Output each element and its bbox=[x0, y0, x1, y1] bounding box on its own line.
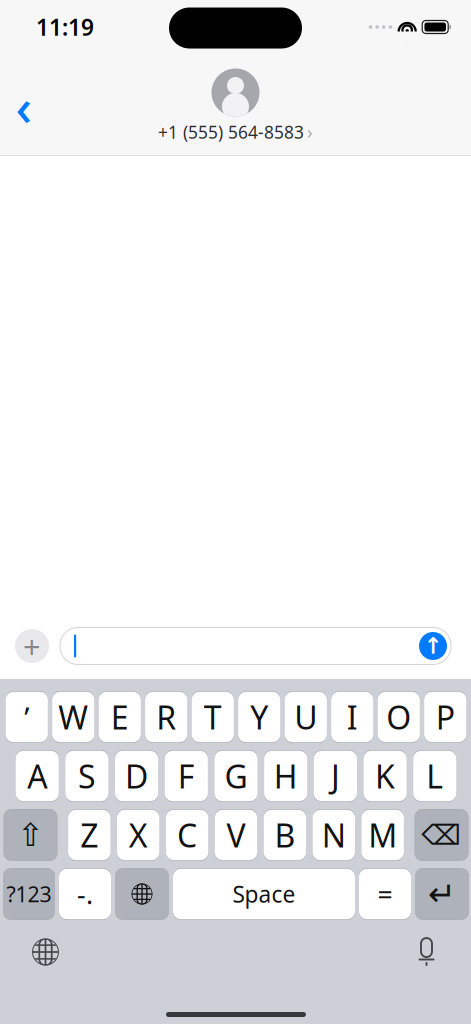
staticText: U bbox=[294, 696, 317, 738]
button[interactable]: H bbox=[264, 750, 307, 802]
staticText: 11:19 bbox=[36, 12, 94, 42]
button[interactable]: B bbox=[264, 809, 306, 861]
staticText: I bbox=[347, 696, 358, 738]
staticText: ‹ bbox=[15, 72, 32, 140]
staticText: ↵ bbox=[428, 875, 456, 913]
button[interactable]: Switch keyboard bbox=[22, 929, 68, 975]
staticText: J bbox=[331, 755, 340, 797]
button[interactable]: J bbox=[314, 750, 357, 802]
staticText: ’ bbox=[24, 697, 29, 736]
staticText: ⌫ bbox=[421, 819, 461, 851]
button[interactable]: Send bbox=[419, 632, 447, 660]
button[interactable]: Z bbox=[68, 809, 110, 861]
button[interactable]: G bbox=[214, 750, 258, 802]
staticText: N bbox=[322, 814, 346, 856]
staticText: C bbox=[177, 814, 197, 856]
staticText: D bbox=[125, 755, 148, 797]
button[interactable]: M bbox=[361, 809, 404, 861]
staticText: Z bbox=[80, 814, 98, 856]
button[interactable]: Shift bbox=[3, 809, 57, 861]
button[interactable]: Delete bbox=[414, 809, 468, 861]
staticText: S bbox=[78, 755, 96, 797]
button[interactable]: D bbox=[115, 750, 158, 802]
staticText: W bbox=[58, 696, 88, 738]
button[interactable]: Back bbox=[2, 84, 46, 128]
staticText: + bbox=[23, 626, 41, 666]
staticText: H bbox=[274, 755, 298, 797]
button[interactable]: Space bbox=[173, 868, 355, 920]
staticText: M bbox=[368, 814, 397, 856]
button[interactable]: I bbox=[331, 691, 373, 743]
button[interactable]: Dictate bbox=[403, 929, 449, 975]
button[interactable]: F bbox=[165, 750, 208, 802]
button[interactable]: S bbox=[65, 750, 108, 802]
staticText: › bbox=[307, 120, 313, 143]
staticText: F bbox=[178, 755, 195, 797]
button[interactable]: O bbox=[378, 691, 420, 743]
button[interactable]: P bbox=[424, 691, 466, 743]
button[interactable]: A bbox=[16, 750, 59, 802]
button[interactable]: R bbox=[145, 691, 187, 743]
staticText: +1 (555) 564-8583 bbox=[158, 120, 304, 143]
staticText: K bbox=[375, 755, 395, 797]
button[interactable]: X bbox=[117, 809, 159, 861]
button[interactable]: Equals bbox=[359, 868, 411, 920]
button[interactable]: Add attachment bbox=[15, 629, 49, 663]
button[interactable]: N bbox=[313, 809, 355, 861]
staticText: = bbox=[377, 876, 392, 912]
staticText: Y bbox=[250, 696, 268, 738]
staticText: ?123 bbox=[6, 880, 51, 908]
staticText: R bbox=[156, 696, 176, 738]
button[interactable]: Return bbox=[415, 868, 469, 920]
staticText: P bbox=[436, 696, 455, 738]
staticText: Space bbox=[232, 879, 295, 909]
button[interactable]: Apostrophe bbox=[6, 691, 48, 743]
button[interactable]: C bbox=[166, 809, 208, 861]
staticText: T bbox=[204, 696, 222, 738]
button[interactable]: K bbox=[363, 750, 407, 802]
button[interactable]: Numbers and symbols bbox=[3, 868, 55, 920]
button[interactable]: V bbox=[215, 809, 257, 861]
staticText: ↑ bbox=[423, 633, 442, 659]
staticText: V bbox=[226, 814, 245, 856]
button[interactable]: L bbox=[413, 750, 456, 802]
button[interactable]: W bbox=[52, 691, 94, 743]
staticText: L bbox=[426, 755, 443, 797]
button[interactable]: U bbox=[285, 691, 327, 743]
button[interactable]: Hyphen period bbox=[59, 868, 111, 920]
button[interactable]: Y bbox=[238, 691, 280, 743]
button[interactable]: Next keyboard bbox=[115, 868, 169, 920]
button[interactable]: T bbox=[192, 691, 234, 743]
button[interactable]: E bbox=[99, 691, 141, 743]
staticText: -. bbox=[77, 876, 93, 912]
staticText: G bbox=[224, 755, 247, 797]
staticText: X bbox=[129, 814, 148, 856]
staticText: O bbox=[386, 696, 411, 738]
staticText: A bbox=[27, 755, 47, 797]
staticText: E bbox=[111, 696, 129, 738]
staticText: ⇧ bbox=[17, 817, 44, 853]
staticText: B bbox=[274, 814, 295, 856]
button[interactable]: Contact +1 (555) 564-8583 bbox=[158, 68, 313, 143]
